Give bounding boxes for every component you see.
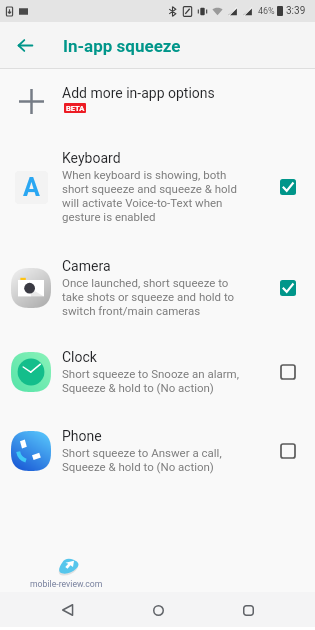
staticText: Phone — [62, 428, 102, 444]
button[interactable]: Clock — [0, 349, 315, 395]
staticText: Clock — [62, 349, 97, 365]
button[interactable]: Phone — [0, 428, 315, 474]
button[interactable]: Checked — [280, 179, 296, 195]
button[interactable]: Camera — [0, 258, 315, 318]
button[interactable]: Back — [52, 594, 84, 626]
button[interactable]: Add more in-app options — [0, 71, 315, 129]
staticText: Short squeeze to Answer a call, Squeeze … — [62, 446, 249, 474]
button[interactable]: Back — [0, 22, 50, 69]
staticText: 46% — [258, 6, 275, 17]
staticText: Short squeeze to Snooze an alarm, Squeez… — [62, 367, 249, 395]
staticText: 3:39 — [286, 5, 306, 17]
staticText: A — [23, 173, 40, 202]
button[interactable]: A — [0, 150, 315, 224]
button[interactable]: Checked — [280, 280, 296, 296]
button[interactable]: Unchecked — [280, 364, 296, 380]
staticText: BETA — [66, 104, 85, 113]
button[interactable]: Recents — [232, 594, 264, 626]
staticText: Camera — [62, 258, 111, 274]
button[interactable]: Home — [142, 594, 174, 626]
staticText: Keyboard — [62, 150, 121, 166]
staticText: Once launched, short squeeze to take sho… — [62, 276, 249, 318]
button[interactable]: Unchecked — [280, 443, 296, 459]
staticText: In-app squeeze — [63, 36, 181, 56]
staticText: mobile-review.com — [30, 579, 103, 589]
staticText: When keyboard is showing, both short squ… — [62, 168, 249, 224]
staticText: Add more in-app options — [62, 85, 215, 101]
